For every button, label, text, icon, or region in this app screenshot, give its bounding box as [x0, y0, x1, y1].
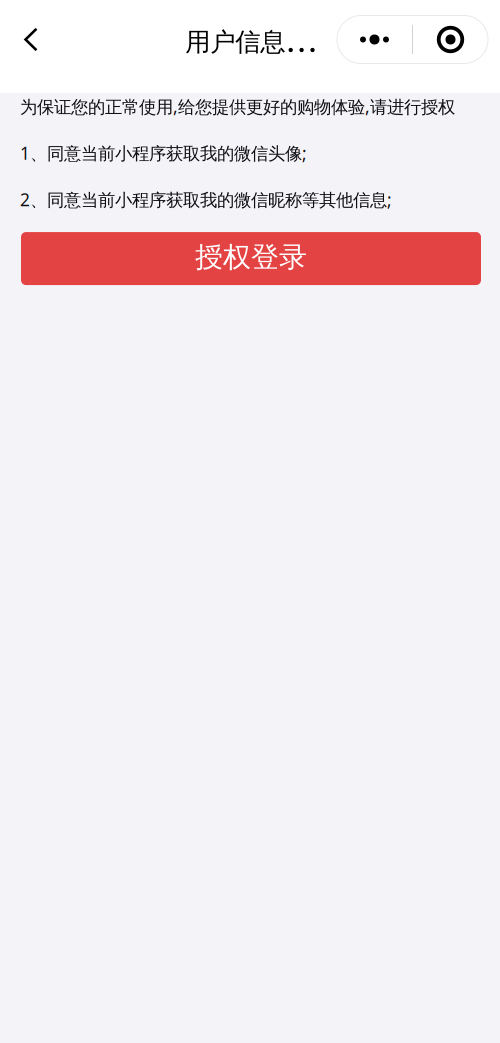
- staticText: 用户信息: [185, 26, 285, 57]
- button[interactable]: Close: [413, 16, 488, 62]
- button[interactable]: Back: [9, 15, 53, 63]
- button[interactable]: More: [337, 16, 412, 62]
- staticText: 2、同意当前小程序获取我的微信昵称等其他信息;: [20, 188, 392, 211]
- staticText: 1、同意当前小程序获取我的微信头像;: [20, 141, 307, 164]
- button[interactable]: 授权登录: [20, 232, 480, 285]
- staticText: 授权登录: [195, 240, 307, 274]
- staticText: 为保证您的正常使用,给您提供更好的购物体验,请进行授权: [20, 95, 455, 118]
